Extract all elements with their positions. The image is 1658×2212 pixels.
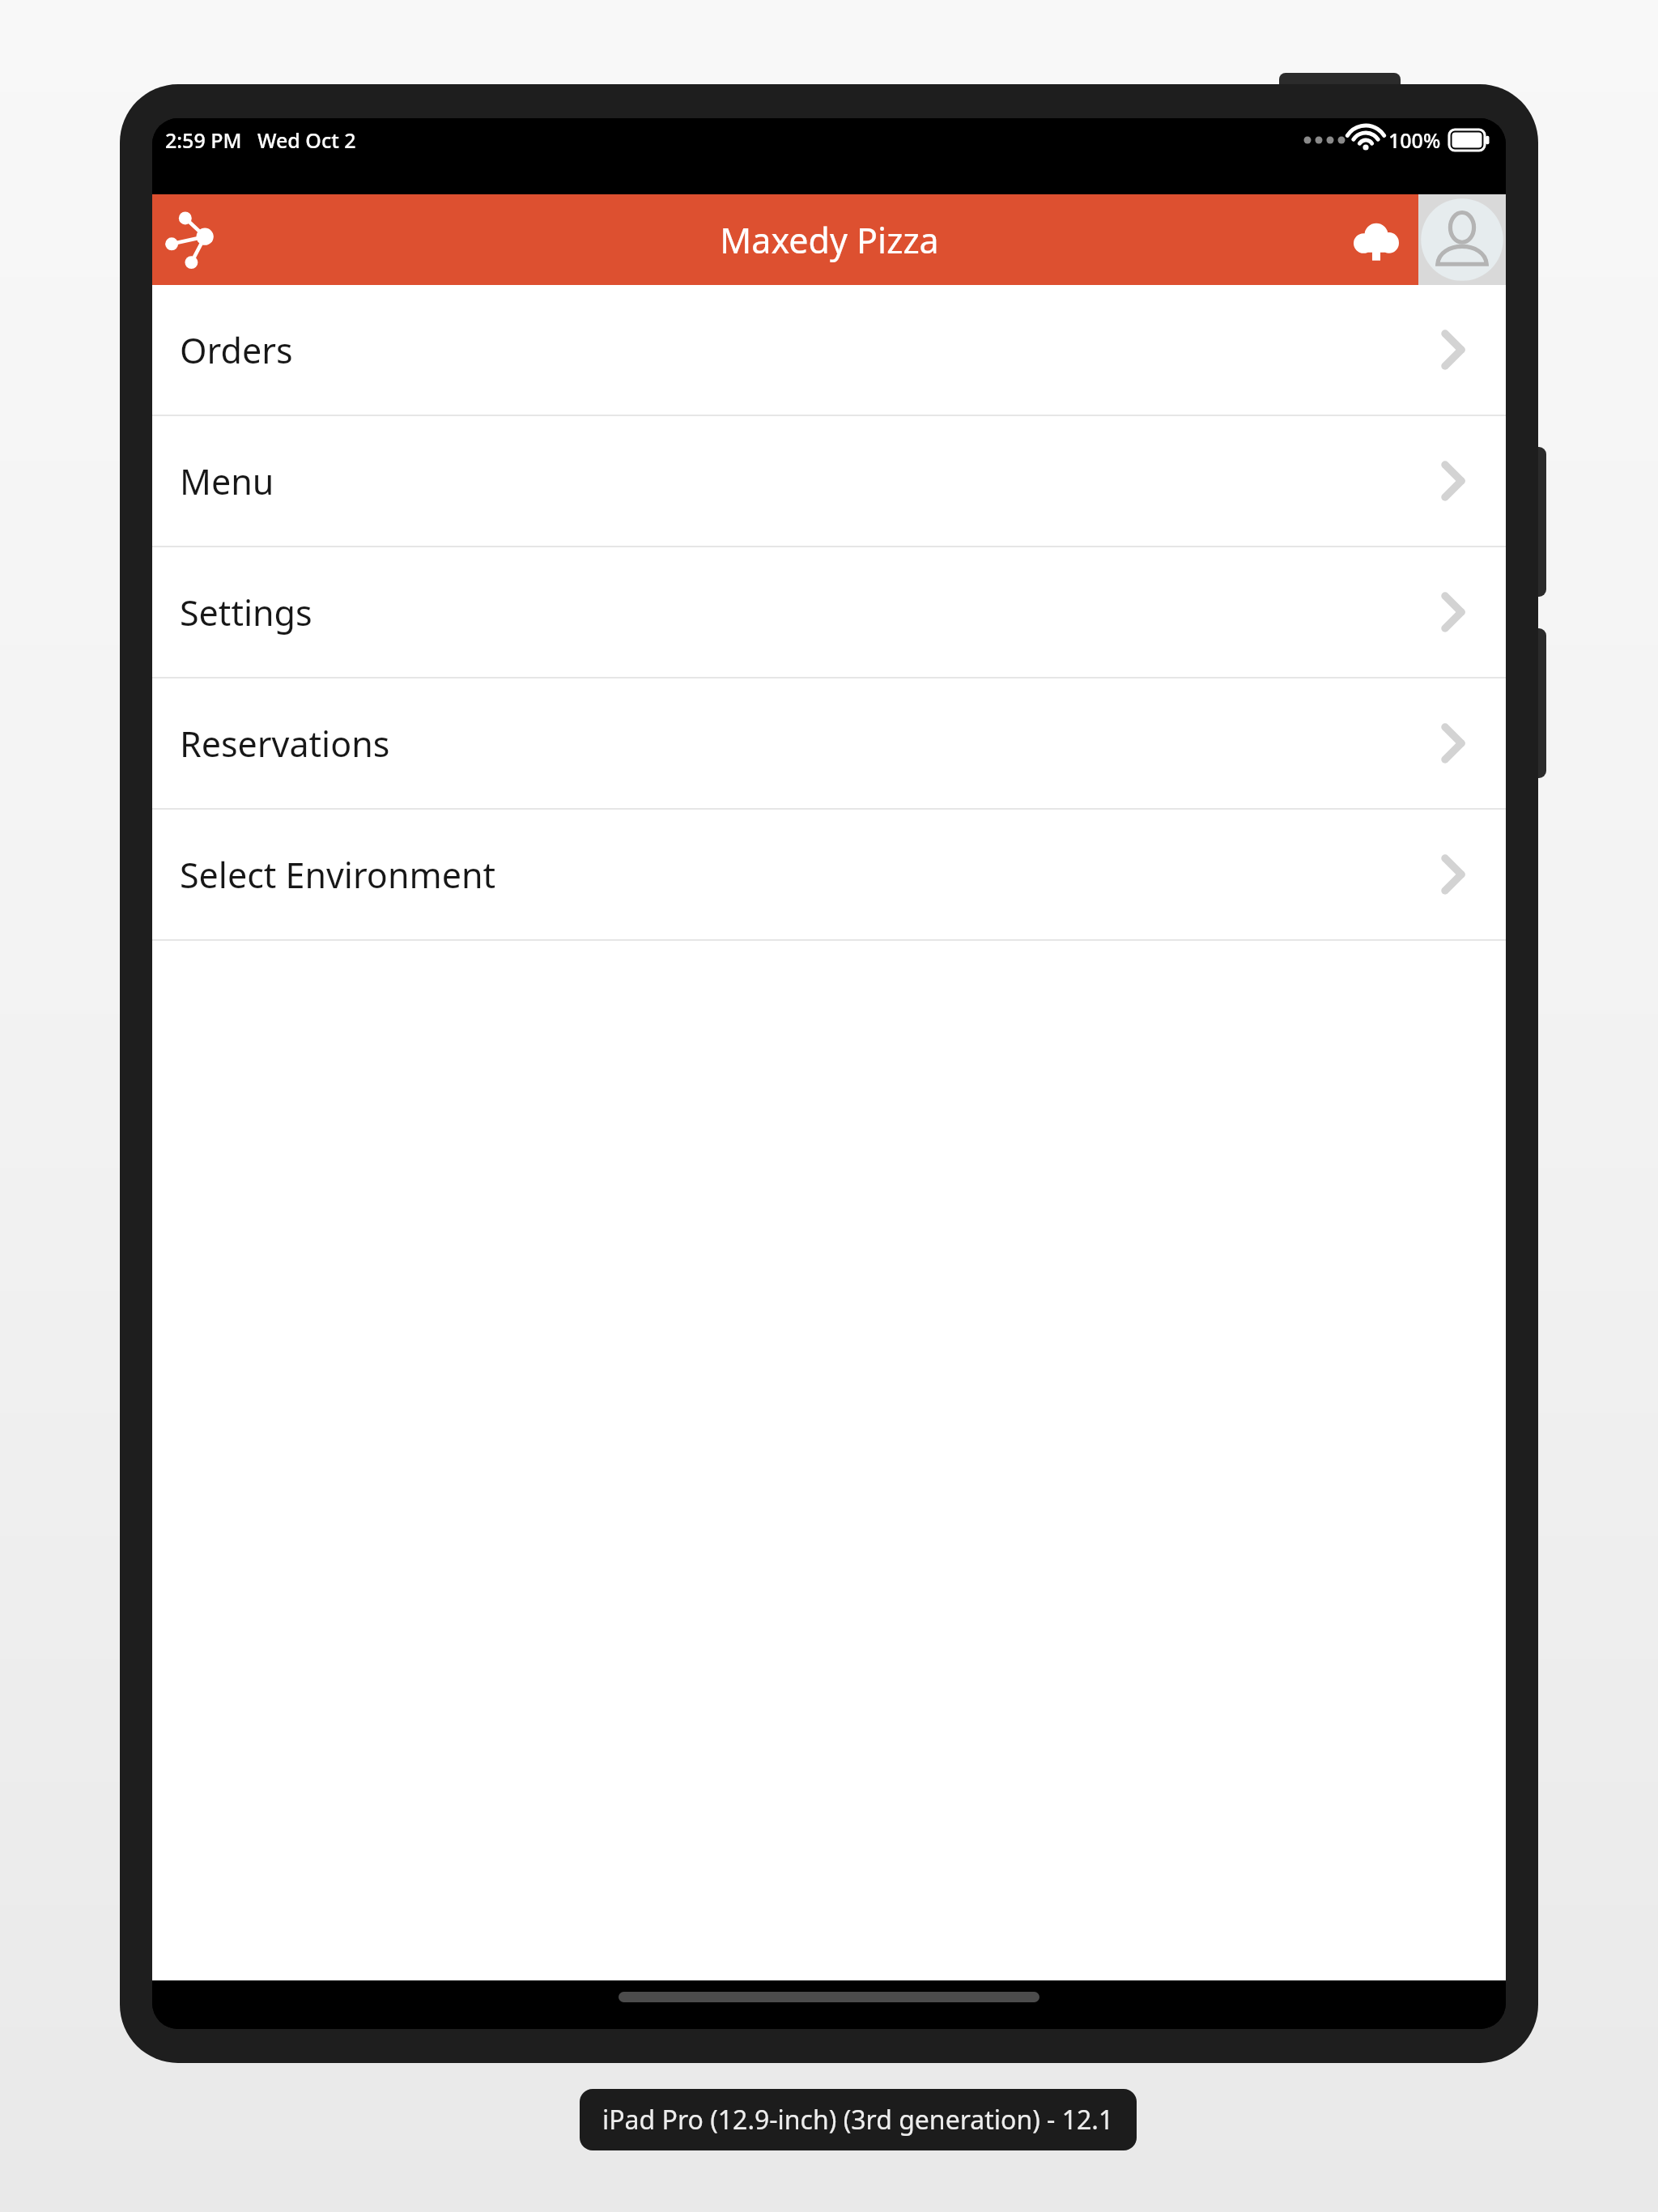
staticText: Menu bbox=[180, 457, 274, 505]
staticText: Maxedy Pizza bbox=[720, 216, 939, 264]
staticText: Settings bbox=[180, 589, 312, 636]
button[interactable]: Network graph bbox=[159, 201, 236, 279]
button[interactable]: Menu bbox=[152, 416, 1506, 547]
button[interactable]: Profile bbox=[1418, 194, 1506, 285]
staticText: Orders bbox=[180, 326, 293, 374]
staticText: Select Environment bbox=[180, 851, 496, 899]
staticText: 100% bbox=[1388, 126, 1441, 154]
staticText: 2:59 PM Wed Oct 2 bbox=[165, 126, 356, 154]
button[interactable]: Orders bbox=[152, 285, 1506, 416]
button[interactable]: Select Environment bbox=[152, 810, 1506, 941]
staticText: iPad Pro (12.9-inch) (3rd generation) - … bbox=[602, 2102, 1114, 2138]
staticText: Reservations bbox=[180, 720, 390, 768]
button[interactable]: Upload to cloud bbox=[1334, 198, 1418, 282]
button[interactable]: Reservations bbox=[152, 678, 1506, 810]
button[interactable]: Settings bbox=[152, 547, 1506, 678]
